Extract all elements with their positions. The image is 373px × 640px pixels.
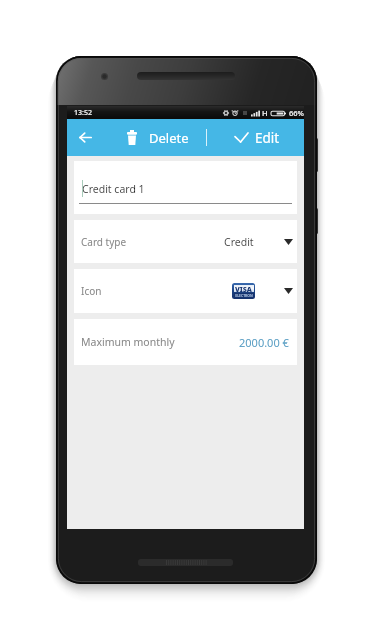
staticText: 13:52 [74,108,92,118]
staticText: Credit [224,235,254,249]
staticText: 66% [289,108,304,118]
button[interactable]: Card type [74,220,297,263]
staticText: H [262,108,268,118]
staticText: Icon [81,284,102,298]
button[interactable]: Delete [121,119,195,156]
button[interactable]: Back [67,119,103,156]
staticText: Edit [255,129,280,147]
staticText: Credit card 1 [82,182,145,196]
button[interactable]: Icon [74,269,297,313]
staticText: ELECTRON [235,293,253,297]
button[interactable]: Edit [228,119,286,156]
button[interactable]: Credit card 1 [74,161,297,214]
button[interactable]: Maximum monthly [74,319,297,365]
staticText: Maximum monthly [81,335,175,349]
staticText: 2000.00 € [239,335,289,350]
staticText: Delete [149,129,189,147]
staticText: Card type [81,235,127,249]
staticText: VISA [235,285,252,295]
